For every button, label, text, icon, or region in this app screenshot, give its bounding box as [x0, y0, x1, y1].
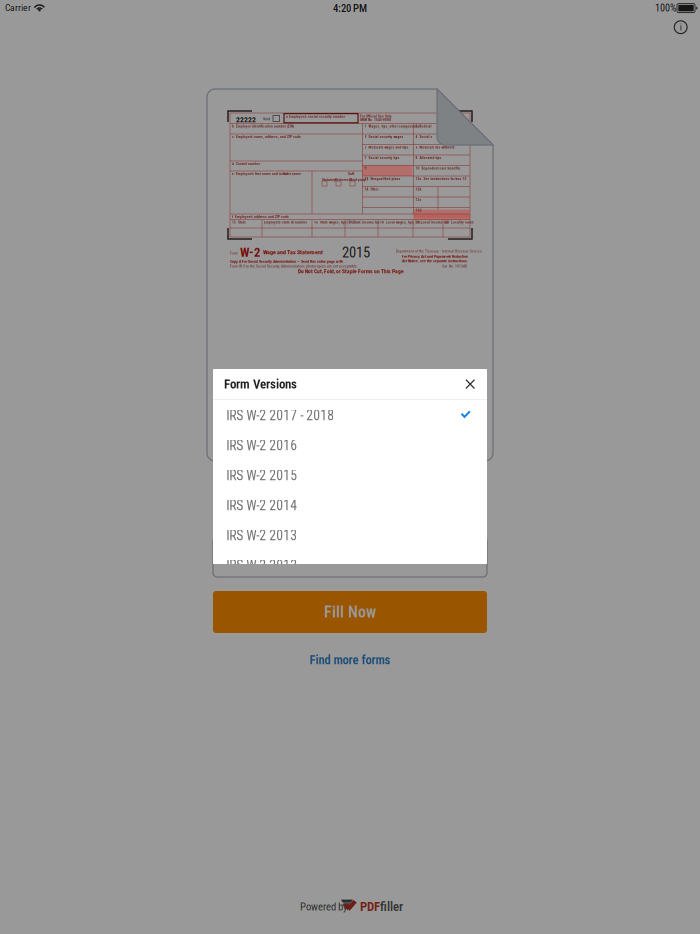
staticText: 7 Social security tips	[364, 156, 399, 160]
staticText: e Employee's first name and initial	[232, 172, 288, 176]
button[interactable]: Info	[666, 12, 696, 42]
staticText: Carrier	[5, 2, 31, 13]
staticText: PDF	[360, 899, 380, 914]
staticText: Suff.	[348, 172, 355, 176]
staticText: 12b	[415, 187, 421, 191]
staticText: 19 Local income tax	[415, 220, 449, 224]
staticText: 4 Social s	[415, 135, 432, 139]
staticText: a Employee's social security number	[286, 114, 345, 119]
staticText: Void	[263, 117, 270, 121]
staticText: 13	[364, 177, 368, 181]
staticText: IRS W-2 2013	[226, 527, 297, 543]
button[interactable]: IRS W-2 2015	[213, 460, 487, 490]
staticText: Retirement	[335, 178, 352, 182]
staticText: For Privacy Act and Paperwork Reduction	[402, 254, 468, 259]
staticText: Form	[230, 251, 238, 255]
staticText: 2015	[342, 244, 370, 261]
staticText: 4:20 PM	[333, 2, 367, 14]
staticText: W-2	[240, 245, 260, 260]
staticText: IRS W-2 2015	[226, 467, 297, 483]
staticText: IRS W-2 2012	[226, 557, 297, 573]
button[interactable]: IRS W-2 2013	[213, 520, 487, 550]
staticText: Cat. No. 10134D	[442, 264, 467, 268]
staticText: 3 Social security wages	[364, 135, 403, 139]
staticText: 14 Other	[364, 187, 378, 191]
staticText: 12a See instructions for box 12	[415, 177, 466, 181]
staticText: Find more forms	[309, 653, 390, 667]
staticText: IRS W-2 2016	[226, 437, 297, 453]
button[interactable]: IRS W-2 2014	[213, 490, 487, 520]
staticText: 12d	[415, 208, 421, 212]
staticText: Third-party	[349, 178, 366, 182]
staticText: c Employer's name, address, and ZIP code	[232, 135, 301, 139]
staticText: IRS W-2 2017 - 2018	[226, 407, 334, 423]
button[interactable]: IRS W-2 2017 - 2018	[213, 400, 487, 430]
staticText: 15 State	[232, 220, 246, 224]
staticText: Form W-3 to the Social Security Administ…	[230, 264, 358, 268]
staticText: 22222	[236, 115, 256, 124]
button[interactable]: Fill Now	[213, 591, 487, 633]
staticText: 16 State wages, tips, etc.	[314, 220, 355, 224]
staticText: Act Notice, see the separate instruction…	[402, 258, 468, 263]
staticText: filler	[380, 899, 403, 914]
staticText: i	[680, 22, 682, 33]
staticText: 1 Wages, tips, other compensation	[364, 124, 421, 128]
staticText: Do Not Cut, Fold, or Staple Forms on Thi…	[298, 268, 404, 275]
staticText: Powered by	[300, 901, 347, 913]
staticText: Last name	[284, 172, 301, 176]
staticText: Form Versions	[224, 376, 297, 392]
staticText: For Official Use Only	[360, 114, 392, 118]
staticText: 17 State income tax	[347, 220, 380, 224]
staticText: Wage and Tax Statement	[263, 248, 323, 256]
staticText: b Employer identification number (EIN)	[232, 124, 294, 128]
staticText: 8 Allocated tips	[415, 156, 441, 160]
staticText: 5 Medicare wages and tips	[364, 145, 408, 149]
staticText: 18 Local wages, tips, etc.	[380, 220, 422, 224]
staticText: d Control number	[232, 162, 260, 166]
staticText: Fill Now	[324, 603, 376, 621]
staticText: 6 Medicare tax withheld	[415, 145, 454, 149]
staticText: 12c	[415, 198, 421, 202]
button[interactable]: IRS W-2 2012	[213, 550, 487, 580]
staticText: 9	[364, 166, 366, 170]
staticText: 100%	[655, 2, 676, 14]
staticText: 10 Dependent care benefits	[415, 166, 460, 170]
button[interactable]: Close	[457, 371, 483, 397]
staticText: 2 Federal	[415, 124, 431, 128]
staticText: 20 Locality name	[445, 220, 474, 224]
button[interactable]: Find more forms	[213, 649, 487, 671]
button[interactable]: IRS W-2 2016	[213, 430, 487, 460]
staticText: f Employee's address and ZIP code	[232, 215, 289, 219]
staticText: Statutory	[322, 178, 336, 182]
staticText: Department of the Treasury - Internal Re…	[396, 249, 482, 253]
staticText: OMB No. 1545-0008	[360, 118, 391, 122]
staticText: IRS W-2 2014	[226, 497, 297, 513]
staticText: Employer's state ID number	[264, 220, 307, 224]
staticText: Copy A For Social Security Administratio…	[230, 259, 343, 264]
staticText: 11 Nonqualified plans	[364, 177, 400, 181]
